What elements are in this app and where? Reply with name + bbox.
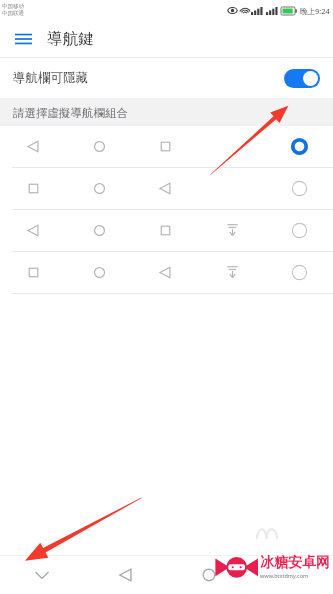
staticText: 導航欄可隱藏	[13, 70, 88, 86]
staticText: 中国移动	[2, 3, 24, 10]
button[interactable]: Home	[167, 556, 250, 594]
staticText: www.btxtdmy.com	[260, 572, 309, 579]
button[interactable]	[0, 252, 333, 293]
button[interactable]: 導航欄可隱藏	[0, 58, 333, 98]
staticText: 冰糖安卓网	[260, 554, 330, 572]
button[interactable]: Menu	[0, 20, 47, 57]
staticText: 請選擇虛擬導航欄組合	[13, 106, 128, 120]
button[interactable]: Hide navigation bar	[0, 556, 84, 594]
button[interactable]: Back	[84, 556, 167, 594]
button[interactable]	[0, 210, 333, 251]
button[interactable]	[0, 126, 333, 167]
button[interactable]	[0, 168, 333, 209]
staticText: 中国联通	[2, 10, 24, 17]
staticText: 導航鍵	[47, 29, 94, 49]
staticText: 晚上9:24	[300, 6, 330, 16]
